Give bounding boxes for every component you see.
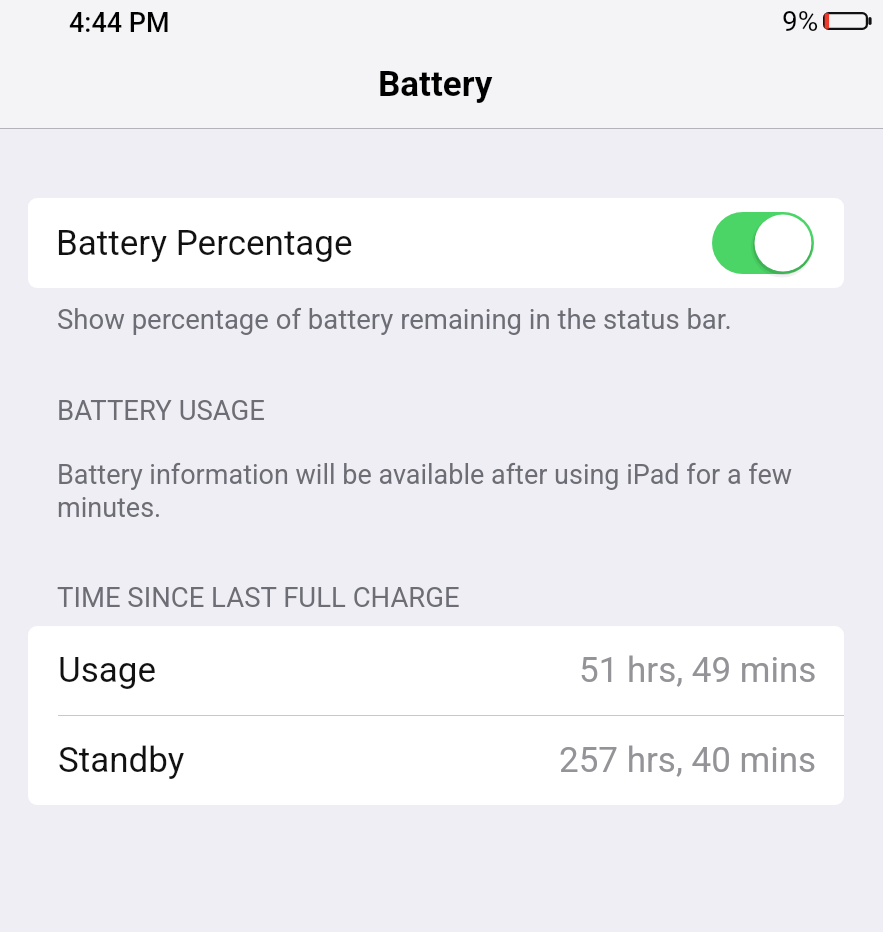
staticText: Battery: [378, 64, 493, 105]
staticText: Show percentage of battery remaining in …: [57, 303, 732, 335]
staticText: TIME SINCE LAST FULL CHARGE: [57, 581, 460, 613]
staticText: Usage: [58, 650, 157, 691]
button[interactable]: Battery Percentage: [28, 198, 844, 288]
staticText: 257 hrs, 40 mins: [559, 740, 817, 781]
button[interactable]: Usage: [28, 626, 844, 715]
staticText: 4:44 PM: [69, 7, 170, 39]
other: Battery level 9 percent: [823, 12, 872, 30]
staticText: Battery Percentage: [56, 223, 353, 264]
staticText: Standby: [58, 740, 185, 781]
staticText: 9%: [782, 5, 819, 38]
staticText: 51 hrs, 49 mins: [579, 650, 817, 691]
button[interactable]: Standby: [28, 716, 844, 805]
staticText: Battery information will be available af…: [57, 459, 857, 524]
staticText: BATTERY USAGE: [57, 394, 265, 426]
button[interactable]: Battery Percentage, on: [712, 212, 814, 274]
